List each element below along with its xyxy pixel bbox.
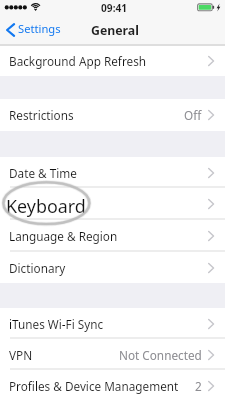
- staticText: Date & Time: [9, 165, 77, 181]
- button[interactable]: Settings: [6, 13, 61, 46]
- staticText: Not Connected: [119, 347, 202, 363]
- button[interactable]: Restrictions: [0, 99, 225, 131]
- staticText: Dictionary: [9, 260, 66, 276]
- button[interactable]: Date & Time: [0, 157, 225, 188]
- staticText: 09:41: [101, 1, 128, 14]
- staticText: Restrictions: [9, 107, 74, 123]
- button[interactable]: Profiles & Device Management: [0, 370, 225, 400]
- staticText: Off: [184, 107, 202, 123]
- staticText: Keyboard: [6, 194, 86, 218]
- button[interactable]: Keyboard: [0, 188, 225, 220]
- button[interactable]: VPN: [0, 339, 225, 370]
- button[interactable]: Language & Region: [0, 220, 225, 252]
- button[interactable]: Dictionary: [0, 252, 225, 283]
- staticText: iTunes Wi-Fi Sync: [9, 316, 104, 332]
- button[interactable]: Background App Refresh: [0, 46, 225, 76]
- staticText: General: [91, 22, 139, 39]
- staticText: 2: [195, 378, 202, 394]
- staticText: Language & Region: [9, 228, 118, 244]
- staticText: Settings: [18, 21, 61, 36]
- staticText: Background App Refresh: [9, 53, 147, 69]
- staticText: Profiles & Device Management: [9, 378, 179, 394]
- button[interactable]: iTunes Wi-Fi Sync: [0, 308, 225, 339]
- staticText: VPN: [9, 347, 33, 363]
